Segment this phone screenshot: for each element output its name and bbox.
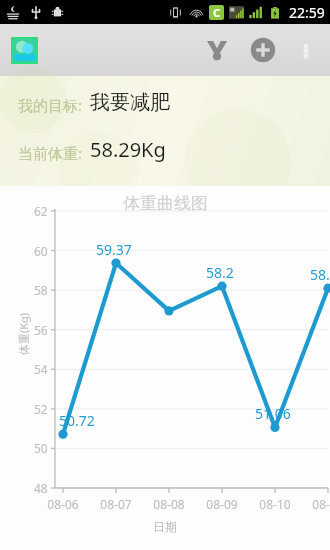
staticText: 体重曲线图 bbox=[123, 193, 208, 214]
button[interactable]: Add bbox=[240, 27, 286, 73]
staticText: 60 bbox=[34, 243, 48, 259]
staticText: 日期 bbox=[153, 519, 177, 534]
staticText: 22:59 bbox=[289, 3, 325, 22]
staticText: 54 bbox=[34, 361, 48, 377]
staticText: 58 bbox=[34, 282, 48, 298]
staticText: 08-07 bbox=[100, 496, 132, 512]
staticText: 08-10 bbox=[259, 496, 291, 512]
staticText: 51.06 bbox=[255, 404, 291, 423]
staticText: 58. bbox=[310, 265, 330, 284]
button[interactable]: 我的目标: bbox=[0, 76, 330, 186]
staticText: C bbox=[213, 5, 221, 20]
button[interactable]: App bbox=[9, 35, 39, 65]
staticText: 58.29Kg bbox=[90, 136, 166, 163]
staticText: 58.2 bbox=[206, 263, 234, 282]
staticText: 08-09 bbox=[206, 496, 238, 512]
staticText: 50.72 bbox=[59, 411, 95, 430]
staticText: 62 bbox=[34, 203, 48, 219]
staticText: 50 bbox=[34, 440, 48, 456]
staticText: 体重(Kg) bbox=[16, 312, 31, 355]
staticText: 我要减肥 bbox=[90, 90, 170, 115]
button[interactable]: More options bbox=[286, 30, 326, 70]
button[interactable]: 体重曲线图 bbox=[0, 186, 330, 550]
staticText: 我的目标: bbox=[18, 95, 83, 115]
staticText: 08-06 bbox=[47, 496, 79, 512]
button[interactable]: Share bbox=[194, 27, 240, 73]
staticText: 56 bbox=[34, 322, 48, 338]
staticText: 59.37 bbox=[96, 240, 132, 259]
staticText: 08-08 bbox=[153, 496, 185, 512]
staticText: 08-11 bbox=[312, 496, 330, 512]
staticText: 52 bbox=[34, 401, 48, 417]
staticText: 48 bbox=[34, 480, 48, 496]
staticText: 当前体重: bbox=[18, 143, 83, 163]
